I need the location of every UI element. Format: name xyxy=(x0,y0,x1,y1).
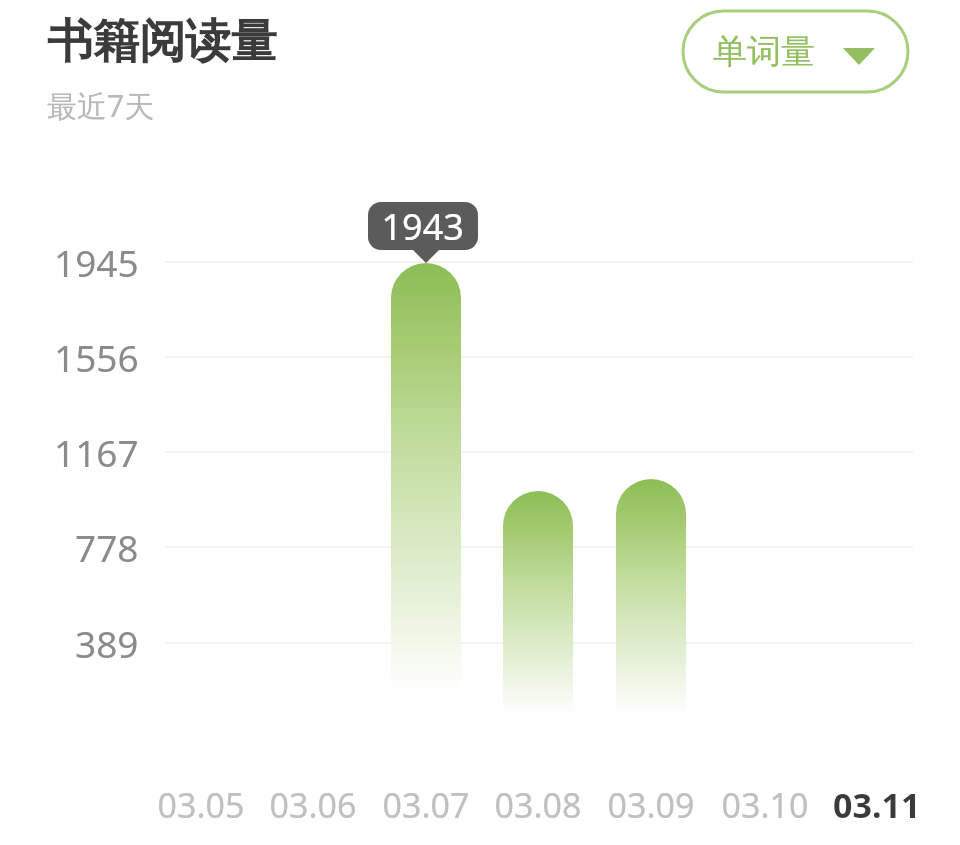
button[interactable]: 03.07 xyxy=(370,150,482,750)
button[interactable]: 03.08 xyxy=(482,150,594,750)
button[interactable]: 03.06 xyxy=(257,150,369,750)
button[interactable]: 单词量，切换统计指标 xyxy=(683,11,908,92)
button[interactable]: 03.09 xyxy=(595,150,707,750)
